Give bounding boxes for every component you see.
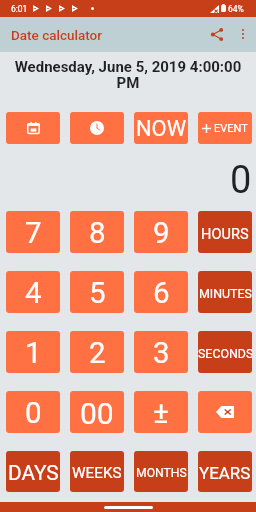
- button[interactable]: NOW: [134, 112, 188, 144]
- button[interactable]: 2: [70, 331, 124, 373]
- button[interactable]: 7: [6, 211, 60, 253]
- button[interactable]: 8: [70, 211, 124, 253]
- staticText: MONTHS: [136, 466, 187, 480]
- button[interactable]: 5: [70, 271, 124, 313]
- button[interactable]: 3: [134, 331, 188, 373]
- staticText: 7: [25, 216, 42, 251]
- button[interactable]: YEARS: [198, 451, 252, 492]
- staticText: 4: [25, 276, 42, 311]
- staticText: 3: [153, 336, 170, 371]
- staticText: NOW: [136, 116, 187, 142]
- staticText: DAYS: [8, 461, 59, 485]
- staticText: ±: [153, 396, 169, 431]
- button[interactable]: SECONDS: [198, 331, 252, 373]
- staticText: 6: [153, 276, 170, 311]
- button[interactable]: MINUTES: [198, 271, 252, 313]
- button[interactable]: 0: [6, 391, 60, 433]
- staticText: 00: [80, 396, 114, 431]
- staticText: Date calculator: [11, 27, 102, 43]
- button[interactable]: More options: [232, 23, 253, 44]
- staticText: 8: [89, 216, 106, 251]
- button[interactable]: ±: [134, 391, 188, 433]
- staticText: 9: [153, 216, 170, 251]
- staticText: 0: [230, 158, 252, 203]
- staticText: HOURS: [201, 225, 249, 242]
- staticText: 0: [25, 396, 42, 431]
- button[interactable]: 9: [134, 211, 188, 253]
- staticText: WEEKS: [72, 464, 122, 482]
- button[interactable]: HOURS: [198, 211, 252, 253]
- button[interactable]: EVENT: [198, 112, 252, 144]
- staticText: 1: [25, 336, 42, 371]
- staticText: 5: [89, 276, 106, 311]
- button[interactable]: 4: [6, 271, 60, 313]
- staticText: Wednesday, June 5, 2019 4:00:00 PM: [5, 58, 251, 92]
- button[interactable]: 00: [70, 391, 124, 433]
- button[interactable]: MONTHS: [134, 451, 188, 492]
- button[interactable]: WEEKS: [70, 451, 124, 492]
- button[interactable]: Share: [205, 23, 228, 46]
- staticText: EVENT: [214, 122, 248, 135]
- staticText: YEARS: [199, 463, 251, 483]
- staticText: 6:01: [11, 4, 28, 14]
- staticText: MINUTES: [199, 286, 252, 301]
- button[interactable]: [70, 112, 124, 144]
- staticText: 2: [89, 336, 106, 371]
- staticText: SECONDS: [198, 346, 252, 361]
- button[interactable]: 6: [134, 271, 188, 313]
- button[interactable]: DAYS: [6, 451, 60, 492]
- button[interactable]: 1: [6, 331, 60, 373]
- staticText: 64%: [228, 4, 244, 14]
- button[interactable]: Delete: [198, 391, 252, 433]
- button[interactable]: [6, 112, 60, 144]
